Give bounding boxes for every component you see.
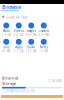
staticText: 840 MB — [26, 33, 37, 37]
staticText: Look for files — [6, 14, 28, 19]
staticText: 1.2 GB — [1, 33, 11, 37]
staticText: Docs — [3, 45, 9, 49]
staticText: Apps — [15, 45, 22, 49]
staticText: 310 MB — [38, 33, 49, 37]
staticText: Music — [3, 29, 10, 33]
staticText: 220 MB — [26, 49, 37, 53]
staticText: 12 MB — [39, 49, 48, 53]
staticText: Images — [27, 29, 36, 33]
staticText: Notes — [40, 45, 48, 49]
staticText: Down — [27, 45, 35, 49]
staticText: Videos — [14, 29, 24, 33]
staticText: 2.4 GB — [14, 33, 24, 37]
staticText: Camera — [39, 29, 48, 33]
staticText: Internal Storage — [2, 75, 18, 86]
staticText: 1.16 GB — [48, 78, 62, 83]
staticText: 64 MB — [2, 49, 11, 53]
staticText: 12.4 GB free of 32 GB — [2, 89, 35, 93]
staticText: Browse — [2, 3, 21, 11]
staticText: 3.1 GB — [14, 49, 24, 53]
